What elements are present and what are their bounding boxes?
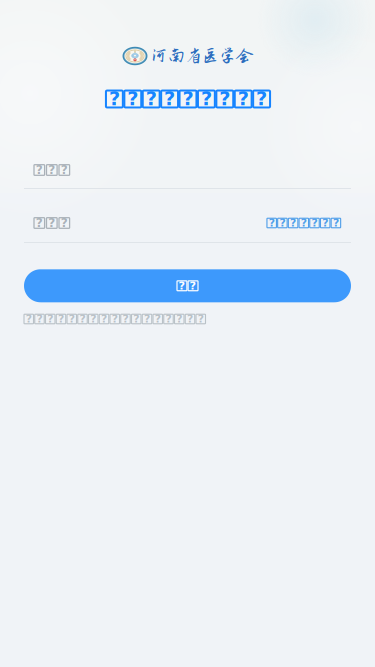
staticText: ? <box>61 163 68 177</box>
staticText: ? <box>101 312 107 325</box>
staticText: ? <box>48 216 55 230</box>
staticText: ? <box>90 312 96 325</box>
staticText: ? <box>311 216 317 229</box>
staticText: ? <box>269 216 275 229</box>
staticText: ? <box>198 312 204 325</box>
staticText: ? <box>146 87 157 110</box>
staticText: ? <box>112 312 118 325</box>
staticText: ? <box>176 312 182 325</box>
staticText: ? <box>178 279 185 292</box>
staticText: ? <box>322 216 328 229</box>
staticText: ? <box>48 163 55 177</box>
staticText: ? <box>301 216 307 229</box>
staticText: ? <box>36 216 43 230</box>
staticText: ? <box>164 87 175 110</box>
staticText: ? <box>256 87 267 110</box>
staticText: ? <box>155 312 161 325</box>
staticText: ? <box>290 216 296 229</box>
staticText: ? <box>189 279 196 292</box>
staticText: ? <box>36 163 43 177</box>
staticText: ? <box>165 312 171 325</box>
staticText: ? <box>61 216 68 230</box>
staticText: ? <box>127 87 138 110</box>
staticText: ? <box>47 312 53 325</box>
staticText: ? <box>333 216 339 229</box>
staticText: 河南省医学会 <box>151 47 253 65</box>
staticText: ? <box>36 312 42 325</box>
staticText: ? <box>201 87 212 110</box>
staticText: ? <box>133 312 139 325</box>
staticText: ? <box>279 216 285 229</box>
staticText: ? <box>26 312 32 325</box>
staticText: ? <box>219 87 230 110</box>
staticText: ? <box>122 312 128 325</box>
button[interactable]: ? <box>24 269 351 302</box>
staticText: ? <box>144 312 150 325</box>
staticText: ? <box>58 312 64 325</box>
staticText: ? <box>187 312 193 325</box>
staticText: ? <box>69 312 75 325</box>
button[interactable]: ? <box>256 209 351 237</box>
staticText: ? <box>182 87 193 110</box>
staticText: ? <box>79 312 85 325</box>
staticText: ? <box>109 87 120 110</box>
staticText: ? <box>238 87 249 110</box>
